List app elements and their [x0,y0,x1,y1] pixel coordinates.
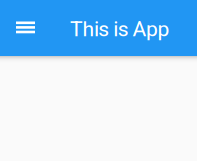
staticText: This is App [70,17,169,41]
button[interactable]: Menu [0,0,51,56]
